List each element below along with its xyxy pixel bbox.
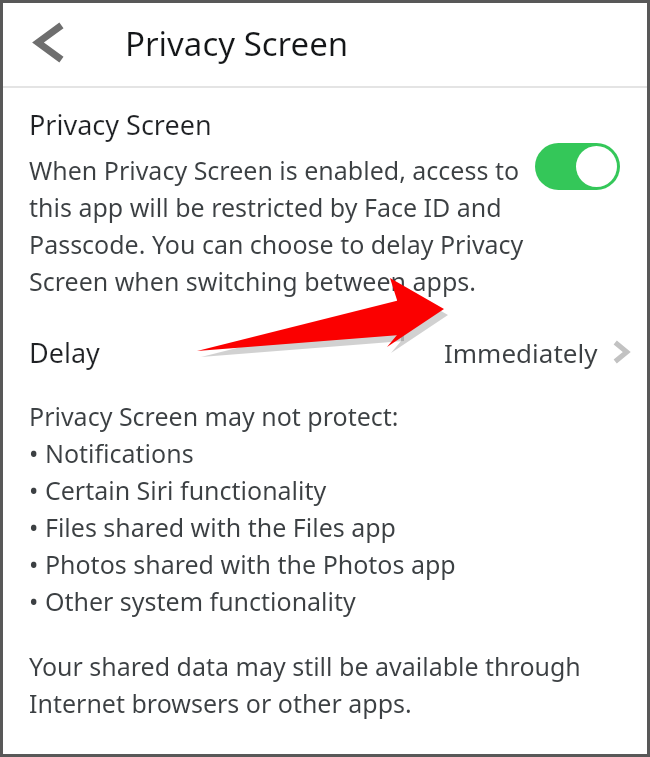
button[interactable]: Delay — [0, 329, 650, 375]
staticText: When Privacy Screen is enabled, access t… — [29, 151, 527, 299]
button[interactable]: Privacy Screen, on — [535, 143, 620, 190]
staticText: Privacy Screen — [125, 21, 349, 66]
button[interactable]: Back — [24, 16, 76, 68]
staticText: Your shared data may still be available … — [29, 647, 636, 721]
staticText: Immediately — [444, 335, 598, 370]
staticText: Privacy Screen — [29, 106, 212, 143]
staticText: Delay — [29, 334, 100, 371]
staticText: Privacy Screen may not protect: • Notifi… — [29, 397, 456, 619]
